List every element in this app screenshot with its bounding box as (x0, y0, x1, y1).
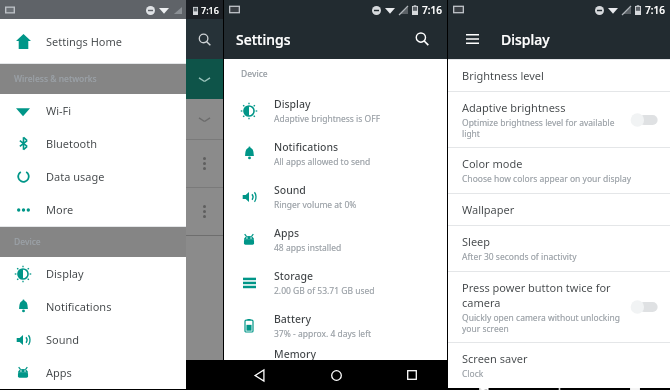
button[interactable]: Recents (399, 362, 425, 388)
staticText: Adaptive brightness (462, 100, 566, 115)
staticText: Display (501, 30, 550, 49)
staticText: Display (274, 97, 311, 111)
staticText: Display (46, 266, 84, 281)
button[interactable]: Notifications (0, 290, 186, 323)
staticText: Battery (274, 312, 311, 326)
button[interactable]: Toggle Adaptive brightness (630, 112, 660, 128)
staticText: 7:16 (422, 3, 442, 17)
staticText: All apps allowed to send (274, 156, 371, 168)
staticText: Notifications (46, 299, 112, 314)
button[interactable]: Brightness level (448, 60, 670, 91)
button[interactable]: Display (224, 89, 447, 132)
staticText: 48 apps installed (274, 242, 342, 254)
button[interactable]: Open navigation drawer (460, 27, 484, 51)
button[interactable]: Sleep (448, 226, 670, 271)
staticText: Screen saver (462, 351, 528, 366)
button[interactable]: Screen saver (448, 343, 670, 388)
button[interactable]: Apps (0, 356, 186, 389)
staticText: Clock (462, 368, 484, 380)
button[interactable]: Search (409, 26, 435, 52)
button[interactable]: Memory (224, 347, 447, 360)
staticText: Wi-Fi (46, 103, 72, 118)
button[interactable]: Wallpaper (448, 194, 670, 225)
button[interactable]: Home (323, 362, 349, 388)
staticText: Quickly open camera without unlocking yo… (462, 312, 620, 334)
button[interactable]: Toggle Press power button twice for came… (630, 299, 660, 315)
staticText: Wireless & networks (14, 73, 97, 85)
staticText: Brightness level (462, 68, 544, 83)
staticText: Color mode (462, 156, 523, 171)
staticText: Adaptive brightness is OFF (274, 113, 381, 125)
button[interactable]: Notifications (224, 132, 447, 175)
staticText: 7:16 (201, 4, 219, 16)
button[interactable]: Bluetooth (0, 127, 186, 160)
staticText: Wallpaper (462, 202, 515, 217)
button[interactable]: Sound (0, 323, 186, 356)
staticText: 2.00 GB of 53.71 GB used (274, 285, 375, 297)
button[interactable]: Sound (224, 175, 447, 218)
staticText: Choose how colors appear on your display (462, 173, 632, 185)
button[interactable]: Apps (224, 218, 447, 261)
button[interactable]: Battery (224, 304, 447, 347)
staticText: Settings (236, 30, 291, 49)
staticText: Ringer volume at 0% (274, 199, 357, 211)
staticText: Press power button twice for camera (462, 280, 630, 310)
staticText: Apps (274, 226, 300, 240)
staticText: More (46, 202, 74, 217)
staticText: After 30 seconds of inactivity (462, 251, 577, 263)
button[interactable]: Back (246, 362, 272, 388)
staticText: Storage (274, 269, 313, 283)
staticText: Memory (274, 347, 317, 360)
staticText: Bluetooth (46, 136, 98, 151)
button[interactable]: Recents (622, 388, 648, 390)
button[interactable]: Search (186, 19, 223, 59)
button[interactable]: Settings Home (0, 19, 186, 63)
button[interactable]: Display (0, 257, 186, 290)
staticText: Sound (274, 183, 306, 197)
button[interactable]: Storage (224, 261, 447, 304)
staticText: Optimize brightness level for available … (462, 117, 615, 139)
button[interactable]: Press power button twice for camera (448, 272, 670, 342)
staticText: 37% - approx. 4 days left (274, 328, 372, 340)
button[interactable]: Wi-Fi (0, 94, 186, 127)
staticText: Settings Home (46, 34, 123, 49)
button[interactable]: Adaptive brightness (448, 92, 670, 147)
button[interactable]: More (0, 193, 186, 226)
staticText: Sleep (462, 234, 491, 249)
staticText: Sound (46, 332, 80, 347)
button[interactable]: Back (470, 388, 496, 390)
staticText: Device (241, 68, 268, 80)
button[interactable]: Home (546, 388, 572, 390)
staticText: Device (14, 236, 41, 248)
staticText: Notifications (274, 140, 339, 154)
staticText: Apps (46, 365, 72, 380)
button[interactable]: Data usage (0, 160, 186, 193)
staticText: 7:16 (645, 3, 665, 17)
staticText: Data usage (46, 169, 105, 184)
button[interactable]: Color mode (448, 148, 670, 193)
